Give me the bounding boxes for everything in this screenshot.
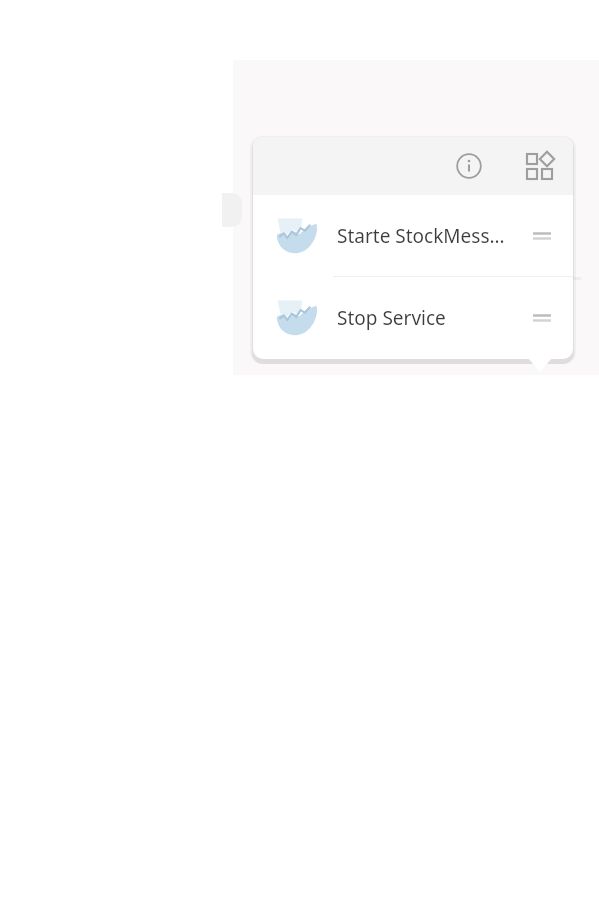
button[interactable]: Widgets	[517, 144, 561, 188]
button[interactable]: Stop Service	[253, 277, 573, 359]
staticText: Starte StockMess…	[337, 223, 525, 249]
other: Reorder	[525, 301, 559, 335]
other: Reorder	[525, 219, 559, 253]
button[interactable]: Starte StockMess…	[253, 195, 573, 277]
button[interactable]: Info	[447, 144, 491, 188]
staticText: Stop Service	[337, 305, 525, 331]
